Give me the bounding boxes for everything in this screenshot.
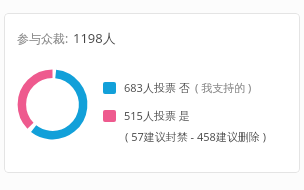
button[interactable]: [4, 13, 300, 173]
staticText: ( 57建议封禁 - 458建议删除 ): [125, 129, 267, 144]
staticText: 参与众裁:: [17, 30, 69, 46]
staticText: 683人投票 否: [124, 80, 190, 95]
button[interactable]: 515人投票 是: [103, 108, 245, 144]
staticText: ( 我支持的 ): [195, 80, 252, 95]
staticText: 515人投票 是: [124, 108, 190, 123]
staticText: 1198人: [73, 29, 116, 47]
button[interactable]: 683人投票 否: [103, 80, 252, 95]
other: 投票结果环形图: [17, 69, 88, 140]
